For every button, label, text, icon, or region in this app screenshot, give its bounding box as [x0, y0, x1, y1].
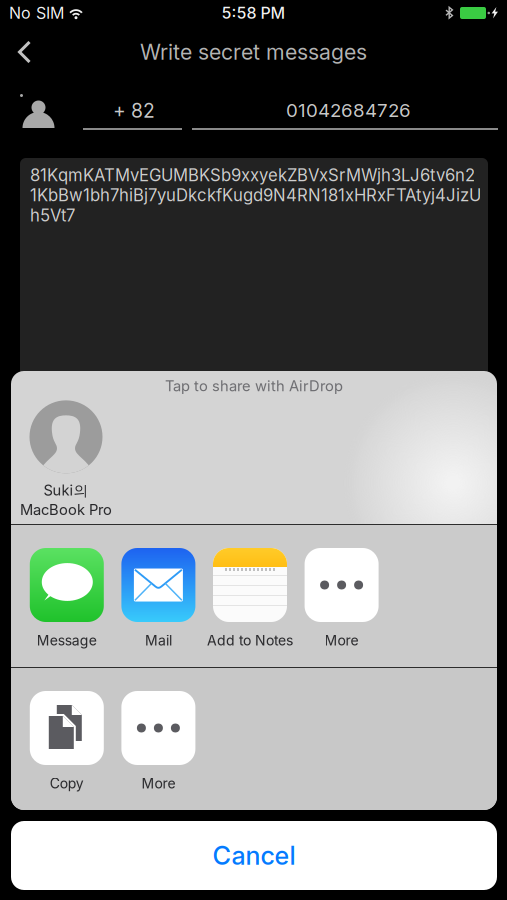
- staticText: 81KqmKATMvEGUMBKSb9xxyekZBVxSrMWjh3LJ6tv…: [30, 165, 481, 225]
- staticText: Tap to share with AirDrop: [165, 377, 343, 395]
- button[interactable]: Message: [21, 548, 113, 660]
- button[interactable]: Back: [0, 31, 45, 72]
- button[interactable]: Cancel: [11, 821, 497, 890]
- button[interactable]: Add to Notes: [204, 548, 296, 660]
- staticText: Suki의: [43, 481, 88, 500]
- staticText: Mail: [145, 632, 172, 649]
- staticText: + 82: [113, 99, 155, 122]
- staticText: More: [325, 632, 359, 649]
- button[interactable]: Mail: [113, 548, 204, 660]
- button[interactable]: Copy: [21, 691, 113, 803]
- staticText: MacBook Pro: [20, 501, 112, 519]
- staticText: No SIM: [9, 3, 64, 23]
- staticText: Write secret messages: [140, 39, 367, 65]
- staticText: 01042684726: [286, 99, 411, 122]
- staticText: Add to Notes: [207, 632, 293, 649]
- staticText: 5:58 PM: [221, 3, 285, 23]
- staticText: Message: [37, 632, 97, 649]
- staticText: Cancel: [212, 840, 295, 871]
- button[interactable]: More: [113, 691, 204, 803]
- button[interactable]: Suki의: [13, 401, 119, 526]
- staticText: More: [141, 775, 175, 792]
- button[interactable]: More: [296, 548, 387, 660]
- staticText: Copy: [50, 775, 84, 792]
